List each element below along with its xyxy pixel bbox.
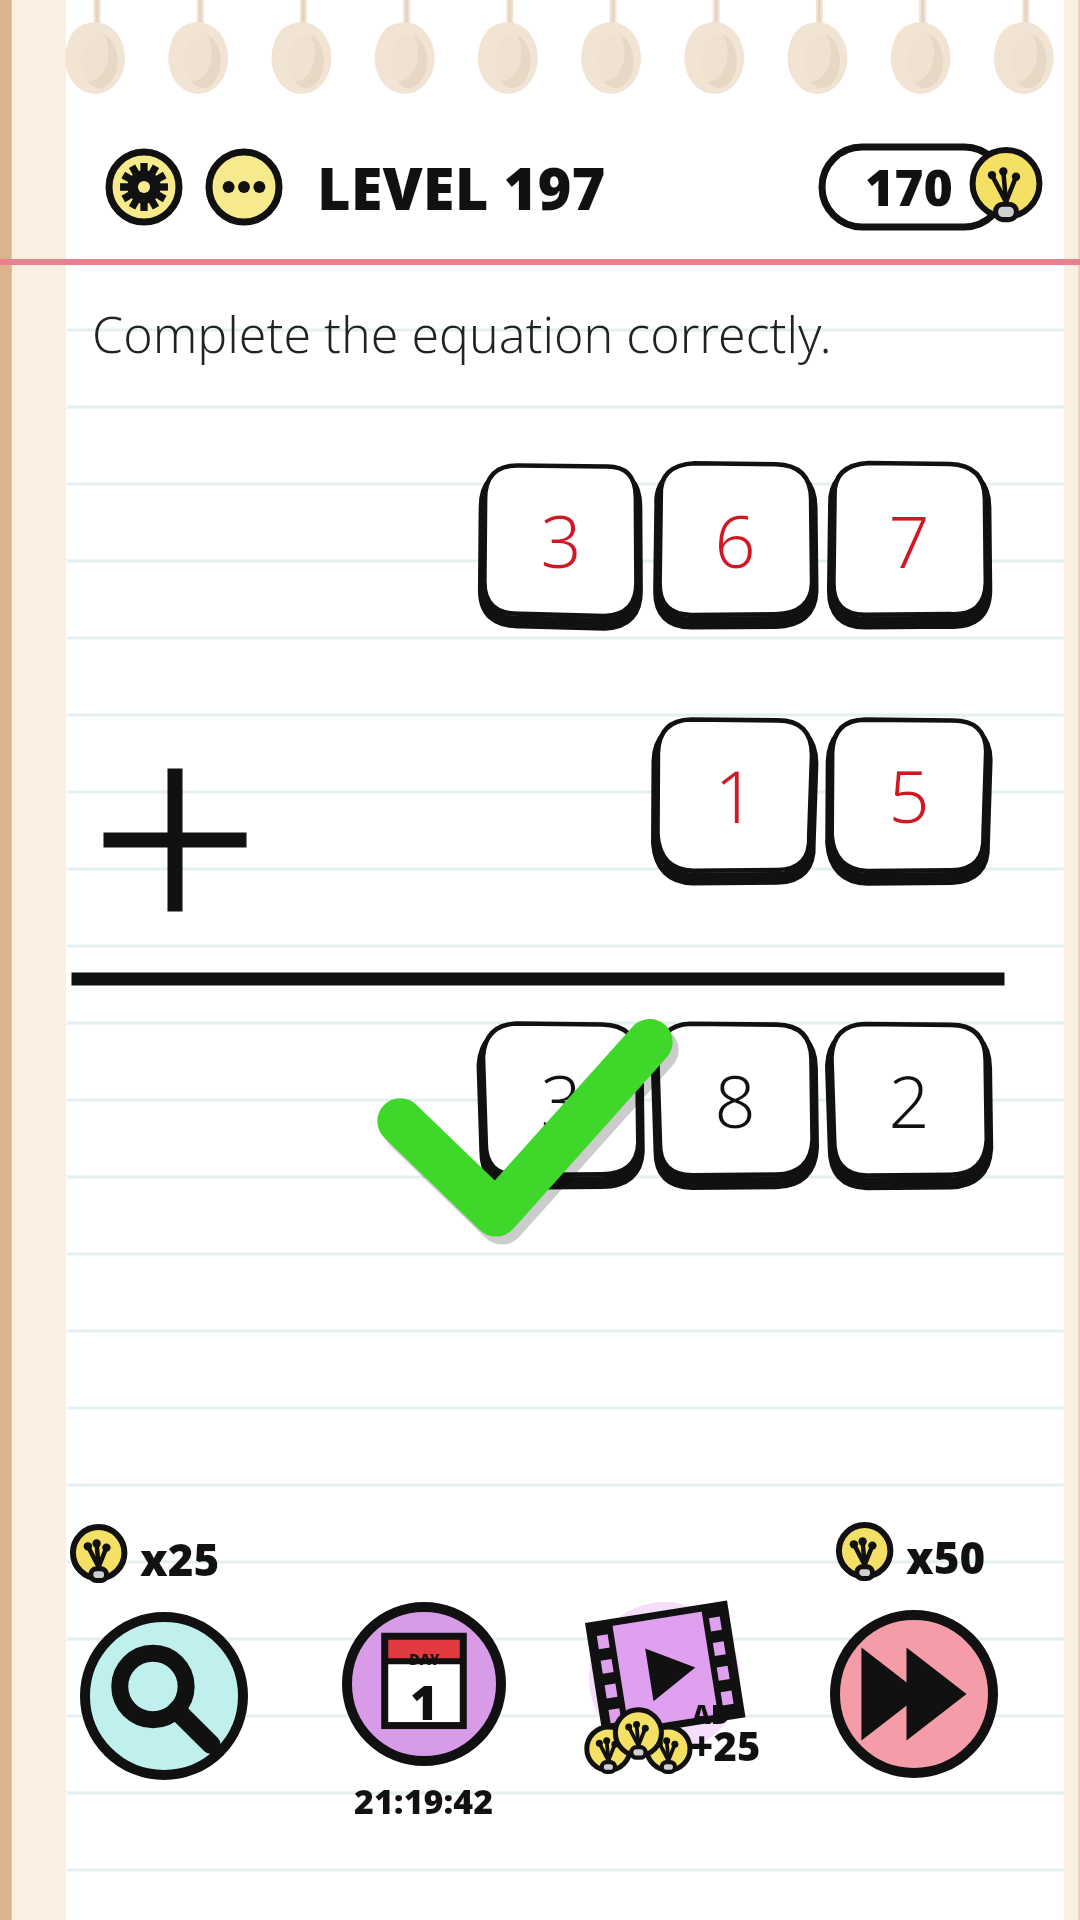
button[interactable]: 3	[485, 465, 637, 629]
staticText: 8	[714, 1051, 756, 1149]
staticText: x25	[140, 1529, 220, 1589]
staticText: 3	[540, 491, 582, 589]
staticText: 1	[714, 746, 756, 844]
button[interactable]: Settings	[105, 148, 183, 226]
staticText: +25	[690, 1718, 761, 1772]
staticText: AD	[692, 1696, 730, 1731]
staticText: 2	[888, 1051, 930, 1149]
button[interactable]: 3	[485, 1025, 637, 1189]
button[interactable]: 2	[833, 1025, 985, 1189]
button[interactable]: Daily reward	[340, 1600, 508, 1768]
button[interactable]: Watch ad for hints	[580, 1600, 760, 1785]
button[interactable]: 8	[659, 1025, 811, 1189]
staticText: 3	[540, 1051, 582, 1149]
button[interactable]: Hint	[78, 1610, 250, 1782]
staticText: Complete the equation correctly.	[92, 300, 832, 368]
staticText: 21:19:42	[354, 1778, 494, 1824]
staticText: 1	[410, 1669, 439, 1734]
button[interactable]: More options	[205, 148, 283, 226]
staticText: DAY	[409, 1649, 440, 1669]
staticText: LEVEL 197	[317, 148, 606, 227]
staticText: x50	[906, 1527, 986, 1587]
staticText: 170	[865, 153, 953, 221]
staticText: 7	[888, 491, 930, 589]
button[interactable]: 6	[659, 465, 811, 629]
button[interactable]: 1	[659, 720, 811, 884]
button[interactable]: Skip level	[828, 1608, 1000, 1780]
button[interactable]: Hints: 170	[822, 143, 1050, 231]
button[interactable]: 7	[833, 465, 985, 629]
staticText: 6	[714, 491, 756, 589]
staticText: 5	[888, 746, 930, 844]
button[interactable]: 5	[833, 720, 985, 884]
